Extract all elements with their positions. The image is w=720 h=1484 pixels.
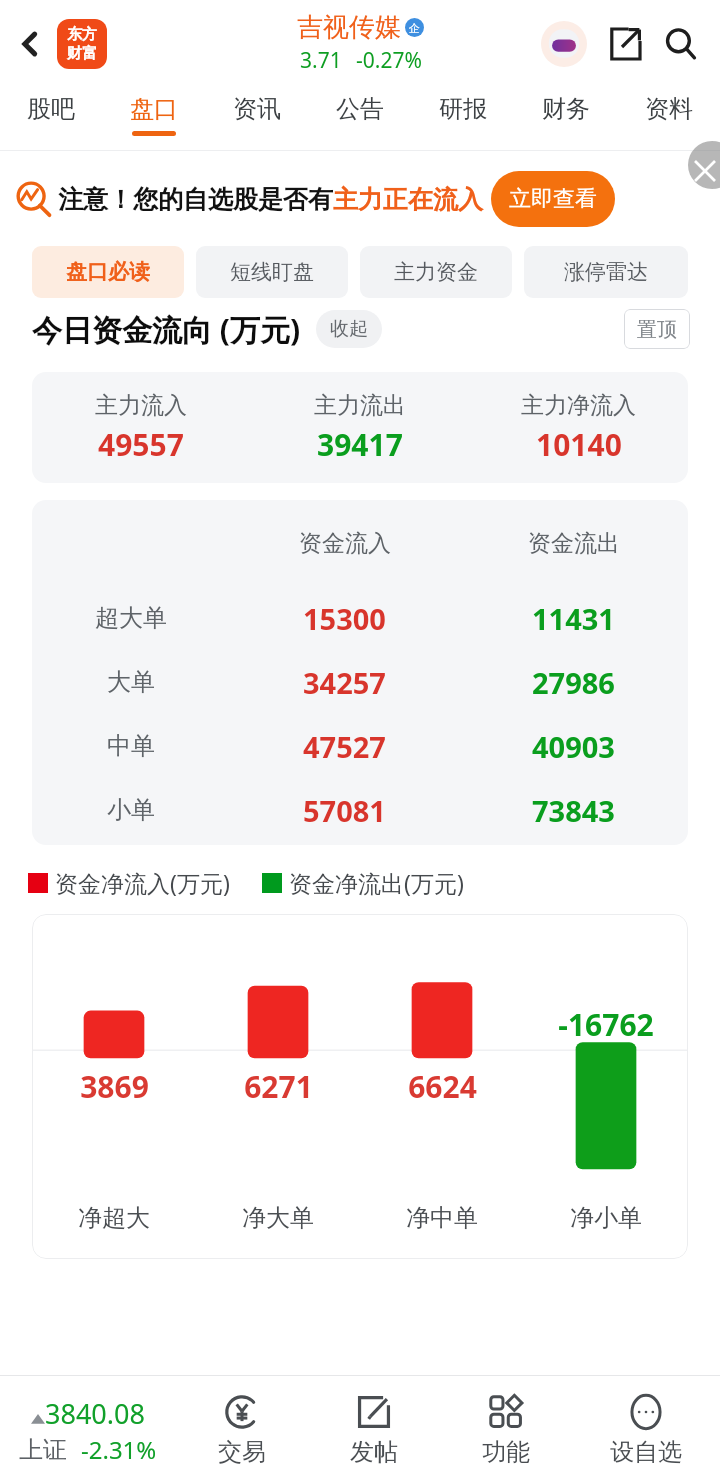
staticText: 财务 (542, 94, 590, 124)
button[interactable]: 交易 (176, 1376, 308, 1484)
staticText: 资金净流入(万元) (55, 867, 230, 898)
staticText: 27986 (532, 663, 615, 702)
button[interactable]: 大单 (32, 650, 688, 714)
staticText: 主力资金 (394, 259, 478, 285)
staticText: 净大单 (242, 1203, 314, 1233)
button[interactable]: 盘口 (102, 88, 205, 150)
button[interactable]: 收起 (330, 310, 368, 348)
button[interactable]: 盘口必读 (32, 246, 184, 298)
button[interactable]: 资讯 (205, 88, 308, 150)
staticText: 主力流入 (95, 391, 187, 420)
button[interactable]: Assistant (538, 18, 590, 70)
button[interactable]: 公告 (308, 88, 411, 150)
staticText: 超大单 (95, 603, 167, 633)
button[interactable]: 3869 (32, 914, 688, 1259)
staticText: 3840.08 (45, 1395, 145, 1432)
button[interactable]: 设自选 (572, 1376, 720, 1484)
staticText: 3.71 (300, 46, 342, 75)
staticText: 大单 (107, 667, 155, 697)
staticText: 盘口必读 (66, 259, 150, 285)
staticText: 小单 (107, 795, 155, 825)
staticText: 主力正在流入 (333, 184, 483, 215)
staticText: 6271 (244, 1066, 313, 1107)
staticText: 47527 (303, 727, 386, 766)
staticText: 上证 (19, 1435, 67, 1465)
staticText: 财富 (67, 44, 97, 63)
staticText: 短线盯盘 (230, 259, 314, 285)
staticText: 57081 (303, 791, 386, 830)
staticText: 置顶 (637, 317, 677, 342)
staticText: 49557 (98, 424, 184, 465)
staticText: 立即查看 (509, 185, 597, 213)
staticText: -0.27% (356, 46, 422, 75)
button[interactable]: 超大单 (32, 586, 688, 650)
button[interactable]: Search (656, 19, 706, 69)
button[interactable]: 发帖 (308, 1376, 440, 1484)
staticText: 公告 (336, 94, 384, 124)
staticText: 11431 (532, 599, 615, 638)
button[interactable]: 功能 (440, 1376, 572, 1484)
button[interactable]: 资料 (617, 88, 720, 150)
staticText: 股吧 (27, 94, 75, 124)
button[interactable]: 主力资金 (360, 246, 512, 298)
staticText: 10140 (536, 424, 622, 465)
staticText: 研报 (439, 94, 487, 124)
staticText: 39417 (317, 424, 403, 465)
staticText: 6624 (408, 1066, 477, 1107)
staticText: 资金净流出(万元) (289, 867, 464, 898)
staticText: -16762 (558, 1004, 654, 1045)
staticText: 3869 (80, 1066, 149, 1107)
staticText: 资金流出 (528, 529, 620, 558)
staticText: 设自选 (610, 1437, 682, 1467)
staticText: 发帖 (350, 1437, 398, 1467)
staticText: 资金流入 (299, 529, 391, 558)
staticText: 盘口 (130, 94, 178, 124)
staticText: 主力净流入 (521, 391, 636, 420)
staticText: 注意！您的自选股是否有 (58, 184, 333, 215)
staticText: 资讯 (233, 94, 281, 124)
staticText: 资料 (645, 94, 693, 124)
staticText: 净中单 (406, 1203, 478, 1233)
staticText: 功能 (482, 1437, 530, 1467)
button[interactable]: Back (6, 20, 54, 68)
staticText: 东方 (67, 25, 97, 44)
button[interactable]: 小单 (32, 778, 688, 842)
button[interactable]: 涨停雷达 (524, 246, 688, 298)
button[interactable]: 财务 (514, 88, 617, 150)
staticText: 34257 (303, 663, 386, 702)
staticText: 收起 (330, 317, 368, 341)
button[interactable]: 主力流入 (32, 372, 688, 483)
staticText: 73843 (532, 791, 615, 830)
staticText: 主力流出 (314, 391, 406, 420)
staticText: 今日资金流向 (万元) (32, 309, 301, 350)
button[interactable]: 短线盯盘 (196, 246, 348, 298)
button[interactable]: East Money (57, 19, 107, 69)
staticText: 净小单 (570, 1203, 642, 1233)
staticText: 交易 (218, 1437, 266, 1467)
button[interactable]: 置顶 (637, 309, 677, 349)
staticText: 企 (409, 21, 420, 35)
button[interactable]: 立即查看 (509, 171, 597, 227)
button[interactable]: 研报 (411, 88, 514, 150)
staticText: -2.31% (81, 1433, 157, 1466)
staticText: 40903 (532, 727, 615, 766)
button[interactable]: 3840.08 (0, 1376, 176, 1484)
staticText: 净超大 (78, 1203, 150, 1233)
staticText: 吉视传媒 (297, 11, 401, 44)
staticText: 涨停雷达 (564, 259, 648, 285)
button[interactable]: 股吧 (0, 88, 102, 150)
button[interactable]: Close (688, 141, 720, 189)
staticText: 15300 (303, 599, 386, 638)
button[interactable]: Share (600, 19, 650, 69)
button[interactable]: 中单 (32, 714, 688, 778)
staticText: 中单 (107, 731, 155, 761)
